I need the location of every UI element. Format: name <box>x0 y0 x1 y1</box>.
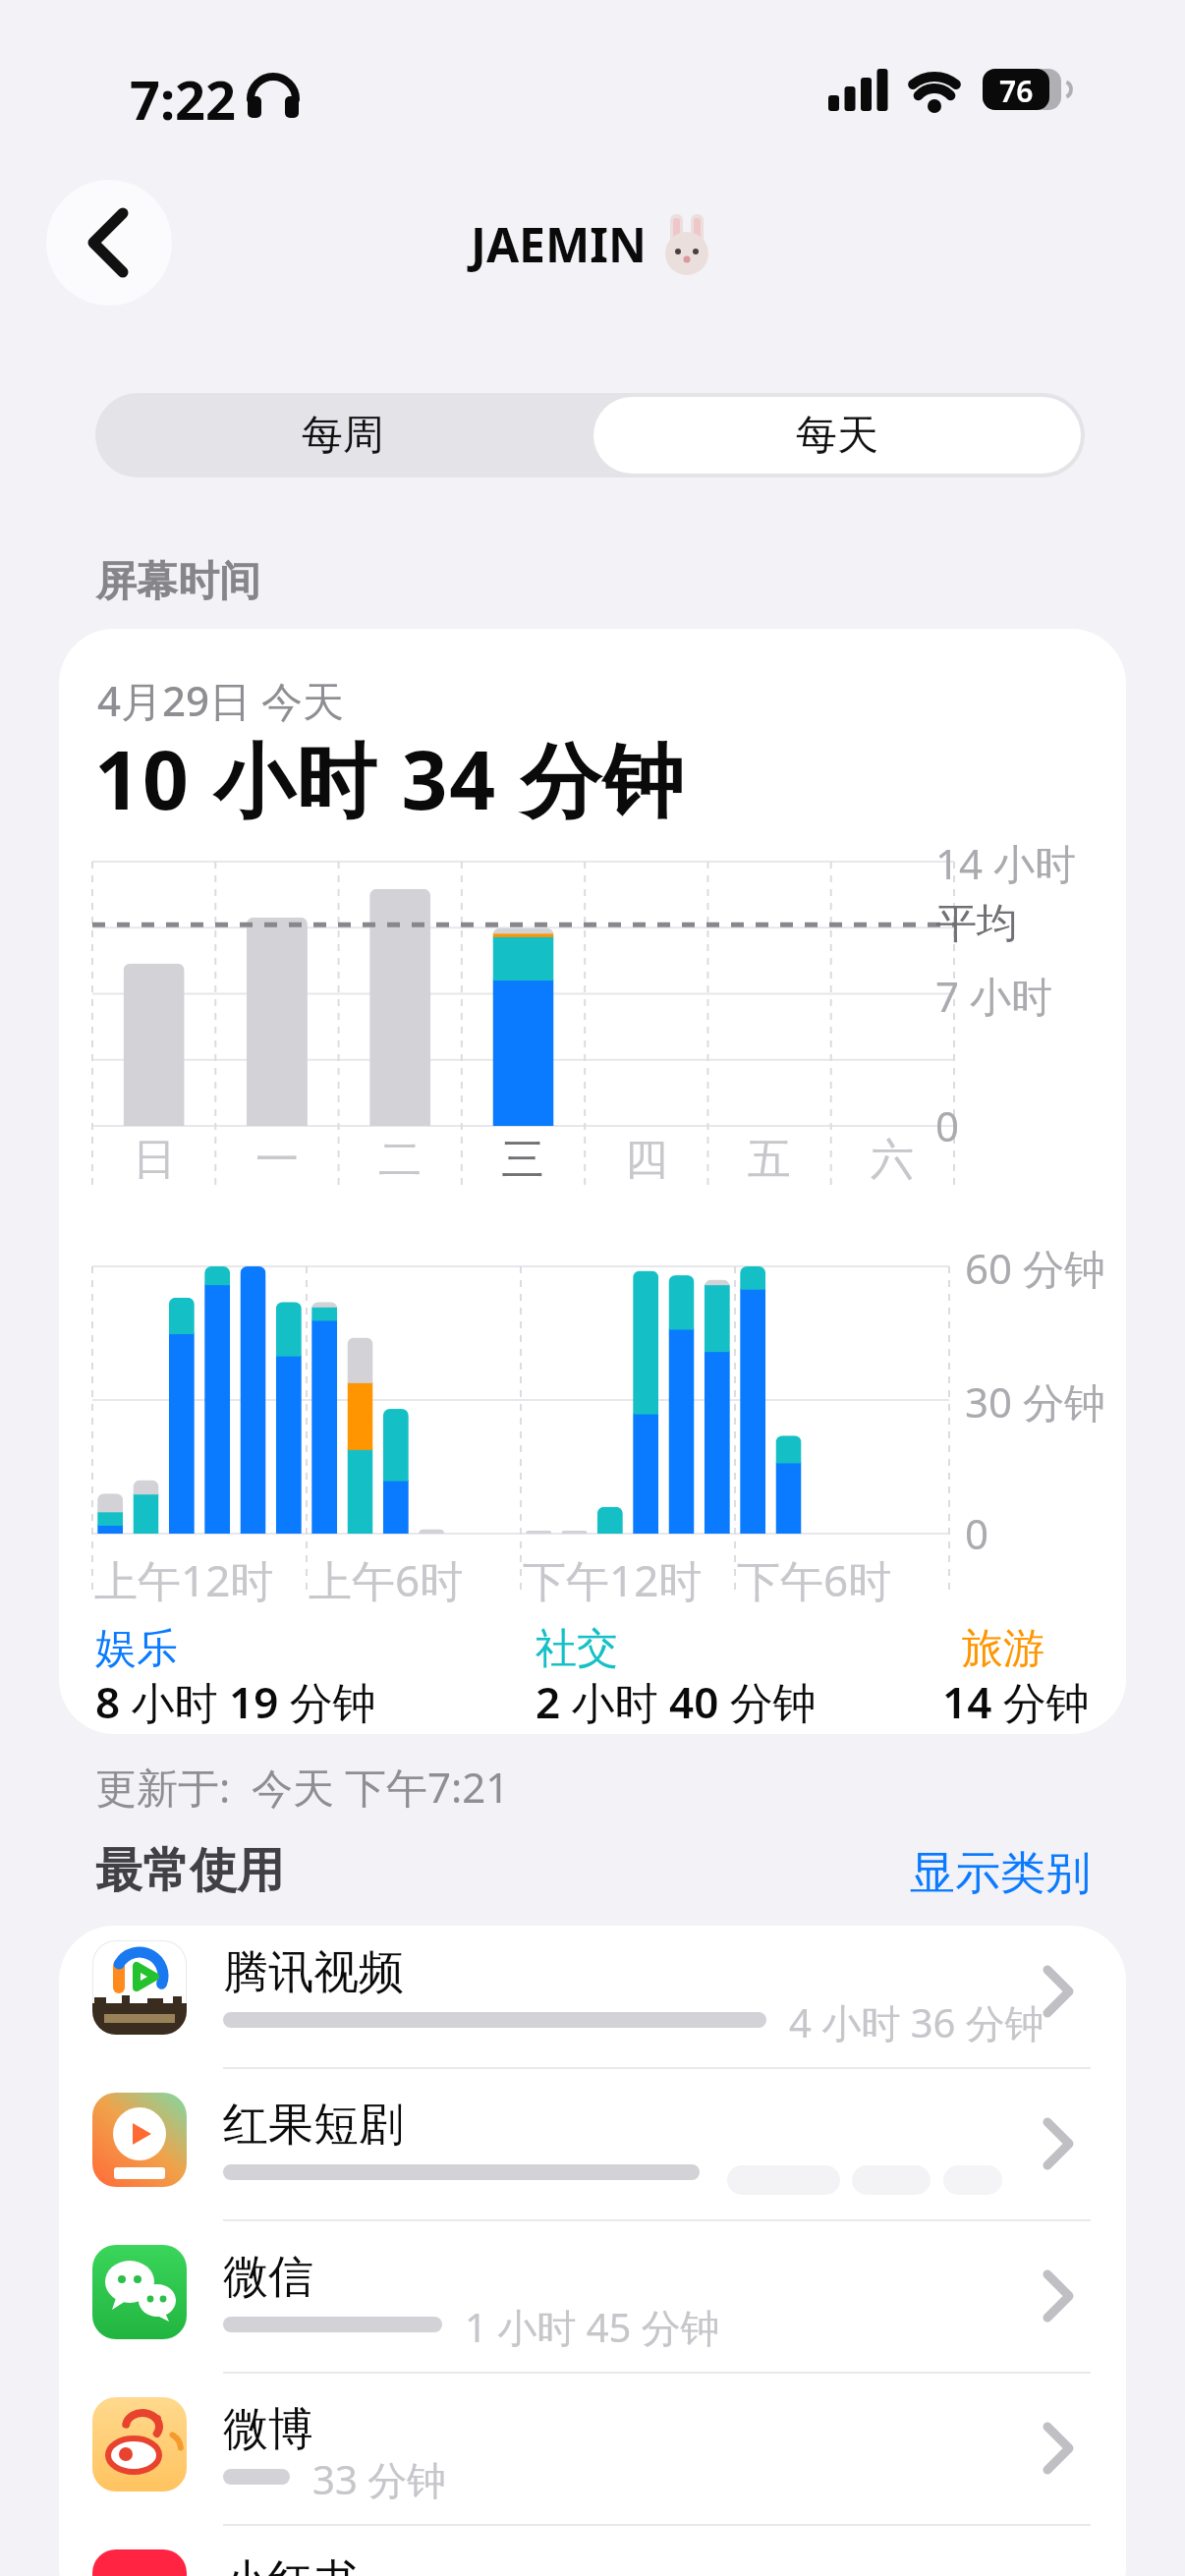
staticText: 60 分钟 <box>965 1240 1105 1296</box>
button[interactable]: 每周 <box>95 393 590 477</box>
staticText: 上午12时 <box>94 1550 274 1609</box>
staticText: 30 分钟 <box>965 1373 1105 1429</box>
staticText: 0 <box>965 1505 989 1561</box>
staticText: 1 小时 45 分钟 <box>465 2300 720 2354</box>
staticText: 上午6时 <box>309 1550 464 1609</box>
button[interactable]: 每天 <box>590 393 1085 477</box>
staticText: 每周 <box>302 410 384 462</box>
button[interactable] <box>59 2230 1126 2382</box>
staticText: 4月29日 今天 <box>97 672 344 728</box>
staticText: 五 <box>748 1133 791 1187</box>
staticText: 显示类别 <box>910 1845 1091 1902</box>
staticText: 二 <box>378 1133 422 1187</box>
staticText: 8 小时 19 分钟 <box>95 1672 376 1731</box>
staticText: 33 分钟 <box>312 2452 447 2506</box>
staticText: 腾讯视频 <box>223 1944 404 2001</box>
staticText: 更新于: 今天 下午7:21 <box>95 1759 510 1815</box>
staticText: 下午6时 <box>737 1550 892 1609</box>
staticText: 14 小时 <box>935 835 1076 891</box>
staticText: 四 <box>625 1133 668 1187</box>
button[interactable] <box>59 2078 1126 2230</box>
staticText: 六 <box>871 1133 914 1187</box>
staticText: 社交 <box>536 1623 618 1675</box>
staticText: 下午12时 <box>523 1550 703 1609</box>
staticText: 每天 <box>796 410 878 462</box>
button[interactable] <box>59 2535 1126 2576</box>
staticText: 最常使用 <box>95 1841 284 1900</box>
staticText: 微信 <box>223 2249 313 2306</box>
staticText: 娱乐 <box>95 1623 178 1675</box>
staticText: 一 <box>255 1133 299 1187</box>
staticText: 14 分钟 <box>942 1672 1090 1731</box>
staticText: 旅游 <box>962 1623 1044 1675</box>
staticText: 4 小时 36 分钟 <box>789 1995 1044 2049</box>
staticText: 10 小时 34 分钟 <box>94 723 686 833</box>
button[interactable] <box>46 180 172 306</box>
staticText: 屏幕时间 <box>95 556 260 608</box>
staticText: 小红书 <box>223 2553 359 2576</box>
staticText: 三 <box>501 1133 544 1187</box>
staticText: 平均 <box>935 898 1018 950</box>
staticText: 日 <box>133 1133 176 1187</box>
staticText: 76 <box>999 71 1034 111</box>
staticText: 2 小时 40 分钟 <box>536 1672 817 1731</box>
staticText: 7 小时 <box>935 968 1052 1024</box>
button[interactable] <box>59 2382 1126 2535</box>
staticText: 7:22 <box>130 63 236 136</box>
button[interactable]: 显示类别 <box>688 1845 1091 1902</box>
button[interactable] <box>59 1926 1126 2078</box>
staticText: 微博 <box>223 2401 313 2458</box>
staticText: 0 <box>935 1097 960 1153</box>
staticText: 红果短剧 <box>223 2097 404 2154</box>
staticText: JAEMIN <box>471 212 647 276</box>
